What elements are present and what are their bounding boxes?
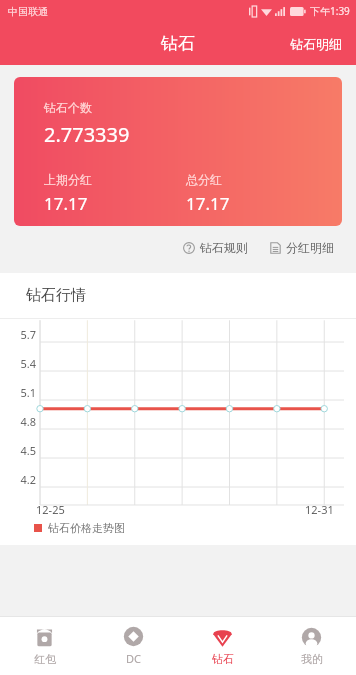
staticText: 钻石规则	[200, 240, 248, 255]
button[interactable]: 我的	[267, 617, 356, 675]
staticText: 5.7	[10, 327, 36, 342]
staticText: 4.2	[10, 472, 36, 487]
staticText: 总分红	[186, 172, 222, 187]
button[interactable]: 钻石	[178, 617, 267, 675]
staticText: 中国联通	[8, 5, 48, 18]
staticText: 钻石	[161, 33, 195, 54]
staticText: 钻石价格走势图	[48, 521, 125, 535]
staticText: 红包	[34, 652, 56, 666]
staticText: 17.17	[186, 192, 230, 215]
staticText: 上期分红	[44, 172, 92, 187]
staticText: DC	[126, 651, 141, 666]
button[interactable]: 红包	[0, 617, 89, 675]
button[interactable]: 钻石规则	[177, 236, 254, 259]
staticText: 我的	[301, 652, 323, 666]
staticText: 12-25	[36, 502, 65, 517]
staticText: 分红明细	[286, 240, 334, 255]
button[interactable]: 分红明细	[264, 236, 340, 259]
staticText: 12-31	[305, 502, 334, 517]
staticText: 钻石个数	[44, 100, 92, 115]
staticText: 5.1	[10, 385, 36, 400]
staticText: 4.5	[10, 443, 36, 458]
staticText: 钻石	[212, 652, 234, 666]
button[interactable]: DC	[89, 617, 178, 675]
staticText: 2.773339	[44, 121, 130, 148]
staticText: 5.4	[10, 356, 36, 371]
staticText: 钻石明细	[290, 36, 342, 52]
staticText: 钻石行情	[26, 286, 86, 305]
staticText: 17.17	[44, 192, 88, 215]
staticText: 下午1:39	[310, 4, 350, 18]
button[interactable]: 钻石明细	[276, 28, 356, 60]
button[interactable]: 钻石个数	[14, 77, 342, 226]
staticText: 4.8	[10, 414, 36, 429]
